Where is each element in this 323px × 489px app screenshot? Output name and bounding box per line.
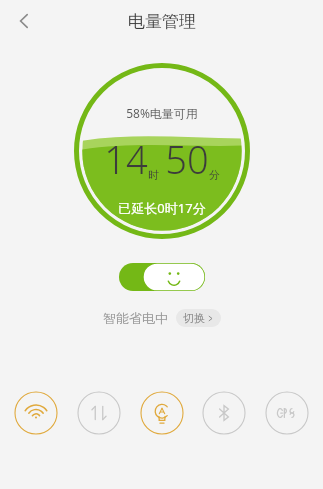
button[interactable]: Bluetooth	[202, 391, 246, 435]
staticText: 14	[104, 133, 148, 185]
staticText: 切换	[183, 311, 205, 325]
button[interactable]: 切换	[176, 309, 221, 327]
button[interactable]: Wi-Fi	[14, 391, 58, 435]
button[interactable]: GPS	[265, 391, 309, 435]
button[interactable]: Power saving toggle, on	[119, 263, 205, 291]
button[interactable]: Battery level 58 percent	[74, 63, 250, 239]
staticText: 分	[209, 168, 220, 182]
button[interactable]: Auto brightness	[140, 391, 184, 435]
staticText: 50	[165, 133, 209, 185]
button[interactable]: Back	[6, 3, 42, 39]
staticText: 已延长0时17分	[118, 199, 206, 217]
staticText: 58%电量可用	[126, 105, 198, 121]
staticText: 电量管理	[128, 11, 196, 32]
button[interactable]: Mobile data	[77, 391, 121, 435]
staticText: 智能省电中	[103, 310, 168, 326]
staticText: 时	[148, 168, 159, 182]
